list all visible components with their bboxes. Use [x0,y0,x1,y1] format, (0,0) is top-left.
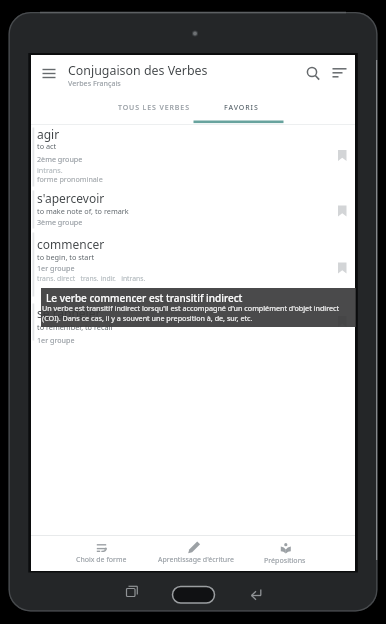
staticText: to remember, to recall [37,322,113,332]
staticText: Choix de forme [76,555,127,565]
staticText: 2ème groupe [37,154,83,164]
staticText: Conjugaison des Verbes [68,62,208,79]
staticText: 3ème groupe [37,217,83,227]
staticText: to make note of, to remark [37,206,129,216]
staticText: TOUS LES VERBES [118,103,190,113]
staticText: Prépositions [264,555,306,565]
staticText: 1er groupe [37,263,75,273]
staticText: FAVORIS [224,103,259,113]
staticText: 1er groupe [37,335,75,345]
staticText: commencer [37,236,105,252]
staticText: Un verbe est transitif indirect lorsqu'i… [42,303,340,313]
staticText: (COI). Dans ce cas, il y a souvent une p… [42,313,253,323]
staticText: to act [37,141,57,151]
staticText: intrans. [37,165,63,175]
staticText: trans. direct trans. indir. intrans. [37,274,146,283]
staticText: Le verbe commencer est transitif indirec… [46,291,243,305]
staticText: Verbes Français [68,78,121,88]
staticText: Aprentissage d'écriture [158,555,234,565]
staticText: to begin, to start [37,252,95,262]
staticText: agir [37,126,60,142]
staticText: forme pronominale [37,174,103,184]
staticText: s'apercevoir [37,190,105,206]
staticText: se rappeler [37,305,101,321]
